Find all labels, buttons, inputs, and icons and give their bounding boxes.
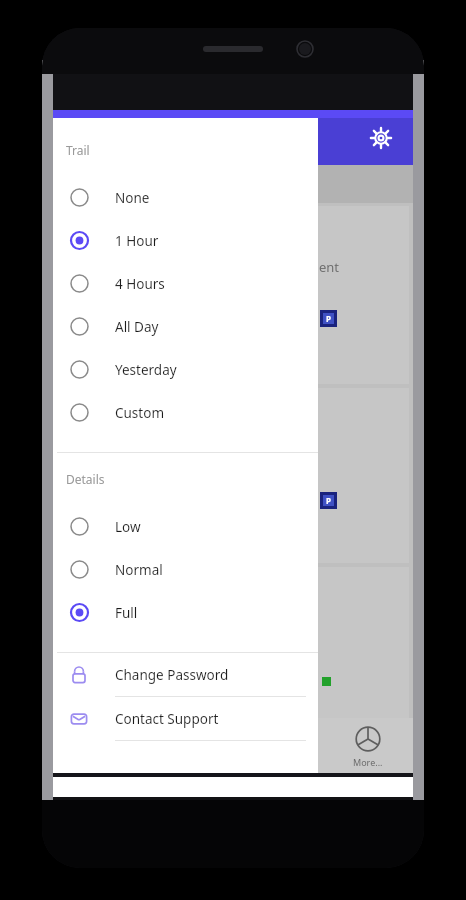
staticText: Custom	[115, 404, 165, 422]
staticText: 1 Hour	[115, 232, 159, 250]
button[interactable]: 4 Hours	[53, 262, 318, 305]
staticText: P	[326, 495, 331, 506]
button[interactable]	[53, 165, 413, 203]
staticText: Contact Support	[115, 710, 219, 728]
button[interactable]	[57, 567, 409, 737]
button[interactable]: Yesterday	[53, 348, 318, 391]
staticText: Normal	[115, 561, 163, 579]
button[interactable]: Management	[57, 206, 409, 384]
staticText: More...	[353, 756, 383, 768]
button[interactable]: None	[53, 176, 318, 219]
staticText: 4 Hours	[115, 275, 165, 293]
button[interactable]: Change Password	[53, 653, 318, 696]
staticText: Yesterday	[115, 361, 177, 379]
button[interactable]: Custom	[53, 391, 318, 434]
staticText: Low	[115, 518, 141, 536]
staticText: P	[326, 313, 331, 324]
staticText: Full	[115, 604, 138, 622]
button[interactable]: P	[57, 388, 409, 563]
button[interactable]: Normal	[53, 548, 318, 591]
button[interactable]: All Day	[53, 305, 318, 348]
button[interactable]: More...	[323, 718, 413, 775]
staticText: Details	[66, 471, 105, 487]
staticText: None	[115, 189, 150, 207]
button[interactable]: Contact Support	[53, 697, 318, 740]
button[interactable]: 1 Hour	[53, 219, 318, 262]
staticText: Management	[257, 258, 339, 276]
button[interactable]: Full	[53, 591, 318, 634]
staticText: Change Password	[115, 666, 229, 684]
staticText: All Day	[115, 318, 159, 336]
button[interactable]: Settings	[359, 116, 403, 160]
button[interactable]: Low	[53, 505, 318, 548]
staticText: Trail	[66, 142, 90, 158]
